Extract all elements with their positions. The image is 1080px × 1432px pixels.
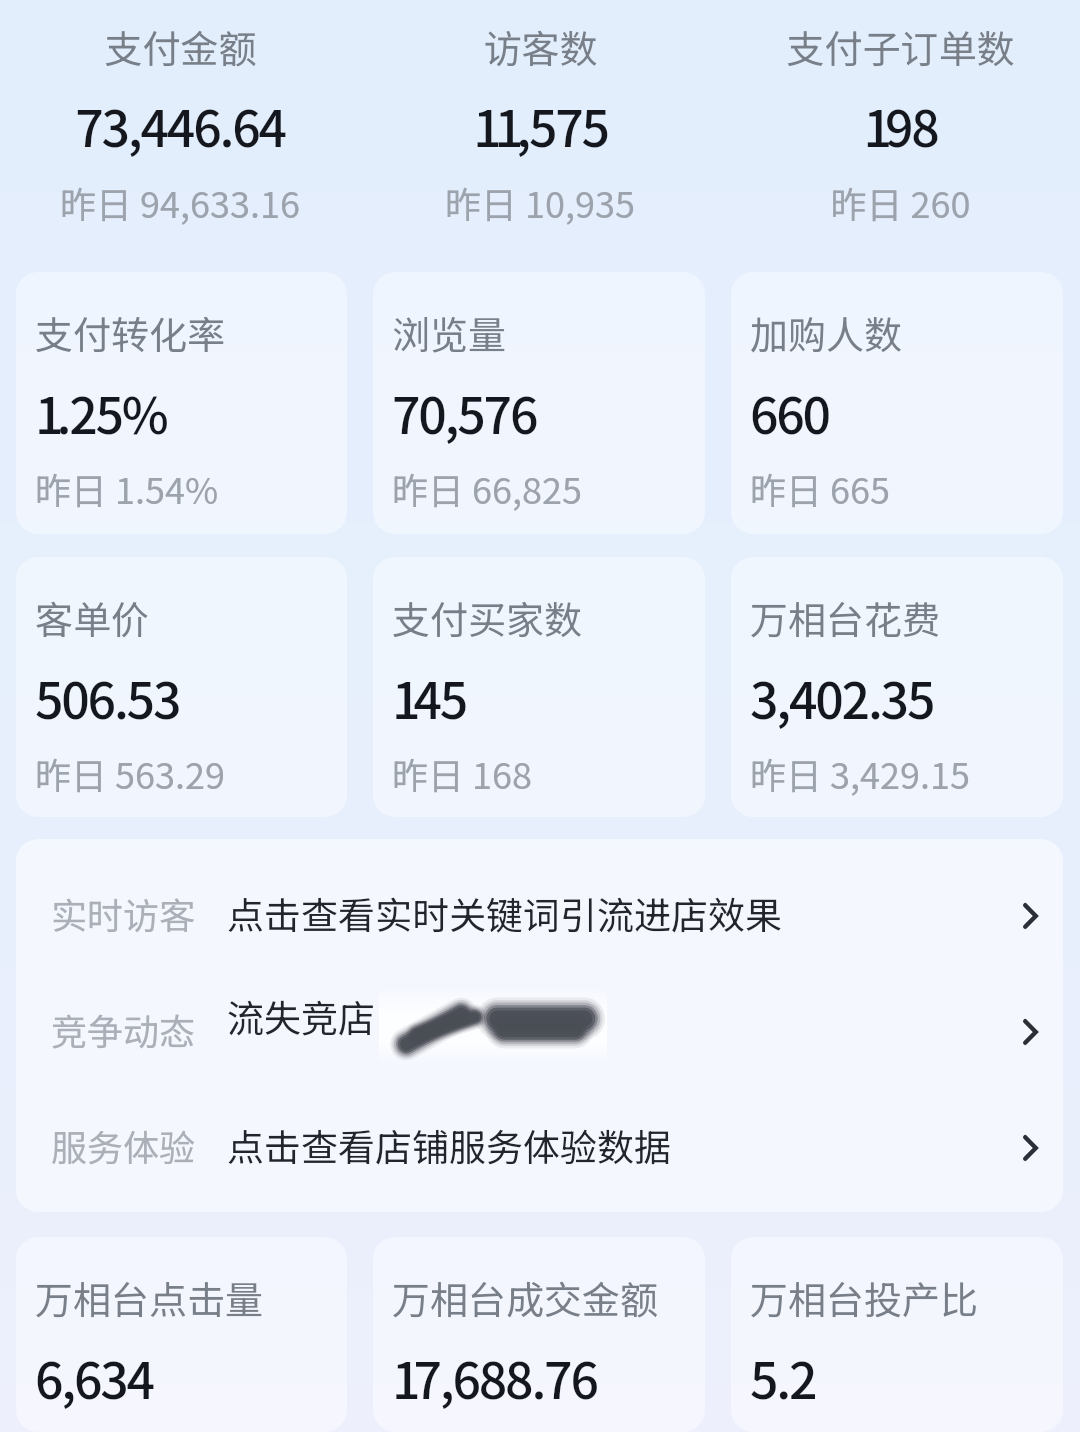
button[interactable]: 客单价	[16, 557, 347, 817]
staticText: 昨日 168	[392, 747, 533, 799]
staticText: 3,402.35	[750, 661, 934, 733]
button[interactable]: 支付转化率	[16, 272, 347, 534]
button[interactable]: 服务体验	[16, 1087, 1063, 1203]
staticText: 5.2	[750, 1341, 816, 1413]
button[interactable]: 万相台投产比	[731, 1237, 1063, 1432]
staticText: 万相台投产比	[750, 1270, 979, 1325]
button[interactable]: 实时访客	[16, 855, 1063, 971]
other: 查看详情	[1023, 903, 1038, 929]
staticText: 服务体验	[51, 1119, 196, 1171]
staticText: 访客数	[483, 19, 598, 74]
staticText: 实时访客	[51, 887, 196, 939]
staticText: 昨日 665	[750, 462, 891, 514]
staticText: 客单价	[35, 590, 150, 645]
staticText: 点击查看店铺服务体验数据	[227, 1118, 671, 1172]
staticText: 昨日 1.54%	[35, 462, 219, 514]
button[interactable]: 万相台花费	[731, 557, 1063, 817]
staticText: 145	[392, 661, 467, 733]
staticText: 506.53	[35, 661, 180, 733]
staticText: 竞争动态	[51, 1003, 196, 1055]
staticText: 198	[863, 89, 938, 161]
staticText: 点击查看实时关键词引流进店效果	[227, 886, 782, 940]
staticText: 流失竞店	[227, 989, 375, 1043]
staticText: 万相台点击量	[35, 1270, 264, 1325]
staticText: 支付买家数	[392, 590, 583, 645]
staticText: 昨日 10,935	[445, 176, 635, 228]
staticText: 70,576	[392, 376, 537, 448]
button[interactable]: 加购人数	[731, 272, 1063, 534]
staticText: 6,634	[35, 1341, 153, 1413]
staticText: 浏览量	[392, 305, 507, 360]
staticText: 支付子订单数	[786, 19, 1015, 74]
staticText: 万相台成交金额	[392, 1270, 659, 1325]
staticText: 万相台花费	[750, 590, 941, 645]
button[interactable]: 支付子订单数	[720, 19, 1080, 228]
staticText: 73,446.64	[75, 89, 285, 161]
staticText: 11,575	[473, 89, 608, 161]
other: 查看详情	[1023, 1135, 1038, 1161]
staticText: 昨日 260	[830, 176, 971, 228]
other: 查看详情	[1023, 1019, 1038, 1045]
button[interactable]: 支付买家数	[373, 557, 705, 817]
staticText: 昨日 66,825	[392, 462, 582, 514]
button[interactable]: 支付金额	[0, 19, 360, 228]
button[interactable]: 访客数	[360, 19, 720, 228]
button[interactable]: 竞争动态	[16, 971, 1063, 1087]
staticText: 昨日 3,429.15	[750, 747, 970, 799]
staticText: 昨日 94,633.16	[60, 176, 300, 228]
button[interactable]: 万相台成交金额	[373, 1237, 705, 1432]
staticText: 支付转化率	[35, 305, 226, 360]
staticText: 昨日 563.29	[35, 747, 225, 799]
staticText: 加购人数	[750, 305, 903, 360]
button[interactable]: 浏览量	[373, 272, 705, 534]
staticText: 660	[750, 376, 829, 448]
staticText: 支付金额	[104, 19, 257, 74]
staticText: 17,688.76	[392, 1341, 597, 1413]
button[interactable]: 万相台点击量	[16, 1237, 347, 1432]
staticText: 1.25%	[35, 376, 167, 448]
